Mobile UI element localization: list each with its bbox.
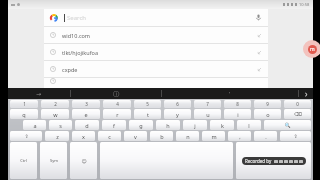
staticText: 5 (146, 101, 149, 107)
button[interactable]: r (103, 109, 131, 119)
button[interactable]: 0 (284, 100, 311, 108)
staticText: › (305, 88, 308, 99)
button[interactable]: 1 (10, 100, 38, 108)
staticText: 🔍 (284, 122, 291, 128)
button[interactable]: wid10.com (44, 27, 268, 43)
button[interactable]: d (75, 120, 99, 130)
staticText: ⌫ (294, 111, 302, 117)
button[interactable]: x (72, 131, 95, 141)
staticText: 10:58 (299, 2, 310, 7)
other: Voice search (255, 14, 262, 21)
button[interactable]: c (98, 131, 121, 141)
button[interactable]: q (10, 109, 38, 119)
button[interactable]: Shift right (280, 131, 311, 141)
button[interactable]: Search (264, 120, 311, 130)
staticText: . (265, 133, 267, 140)
button[interactable]: More suggestions (299, 88, 313, 99)
staticText: q (22, 111, 26, 118)
other: Insert suggestion (257, 50, 262, 55)
button[interactable]: 3 (72, 100, 100, 108)
staticText: m (310, 46, 315, 53)
staticText: 4 (116, 101, 119, 107)
button[interactable]: a (23, 120, 46, 130)
button[interactable]: 8 (224, 100, 251, 108)
staticText: s (59, 122, 62, 129)
button[interactable]: Backspace (284, 109, 311, 119)
staticText: 9 (266, 101, 269, 107)
button[interactable]: tlkt/hjojikufoa (44, 44, 268, 60)
button[interactable]: v (124, 131, 147, 141)
button[interactable]: g (129, 120, 153, 130)
button[interactable]: → (8, 88, 70, 99)
button[interactable]: Enter (236, 142, 311, 179)
button[interactable]: s (49, 120, 72, 130)
button[interactable]: Emoji (70, 142, 97, 179)
staticText: a (33, 122, 37, 129)
button[interactable]: , (228, 131, 251, 141)
staticText: Ctrl (20, 158, 27, 163)
other: Insert suggestion (257, 33, 262, 38)
staticText: y (176, 111, 179, 118)
button[interactable]: u (194, 109, 221, 119)
staticText: o (266, 111, 270, 118)
staticText: 3 (85, 101, 88, 107)
staticText: , (239, 133, 241, 140)
staticText: ⇧ (24, 133, 29, 139)
button[interactable]: e (72, 109, 100, 119)
staticText: g (139, 122, 143, 129)
button[interactable]: 9 (254, 100, 281, 108)
staticText: → (36, 90, 42, 97)
staticText: 7 (206, 101, 209, 107)
staticText: wid10.com (62, 32, 91, 39)
staticText: n (186, 133, 190, 140)
staticText: ☺ (81, 158, 87, 164)
button[interactable]: z (45, 131, 69, 141)
staticText: 0 (296, 101, 299, 107)
button[interactable]: 4 (103, 100, 131, 108)
button[interactable]: t (134, 109, 161, 119)
button[interactable]: j (183, 120, 207, 130)
staticText: ⇧ (293, 133, 298, 139)
button[interactable]: n (176, 131, 199, 141)
staticText: cxpde (62, 66, 78, 73)
staticText: b (160, 133, 164, 140)
button[interactable]: Shift (10, 131, 42, 141)
staticText: ⓘ (113, 90, 119, 98)
button[interactable]: b (150, 131, 173, 141)
button[interactable]: y (164, 109, 191, 119)
button[interactable]: Recording control (303, 40, 320, 58)
button[interactable]: cxpde (44, 61, 268, 77)
staticText: l (248, 122, 250, 129)
button[interactable]: . (254, 131, 277, 141)
button[interactable]: 7 (194, 100, 221, 108)
button[interactable]: 2 (41, 100, 69, 108)
button[interactable]: k (210, 120, 234, 130)
button[interactable]: ⓘ (71, 88, 161, 99)
staticText: Sym (50, 158, 58, 163)
staticText: d (85, 122, 89, 129)
staticText: j (194, 122, 196, 129)
staticText: 6 (176, 101, 179, 107)
button[interactable]: Sym (40, 142, 67, 179)
button[interactable]: i (224, 109, 251, 119)
button[interactable]: 6 (164, 100, 191, 108)
button[interactable]: h (156, 120, 180, 130)
button[interactable]: Search (44, 9, 268, 26)
button[interactable]: Ctrl (10, 142, 37, 179)
button[interactable]: 5 (134, 100, 161, 108)
button[interactable]: o (254, 109, 281, 119)
other: Insert suggestion (257, 67, 262, 72)
staticText: 2 (54, 101, 57, 107)
staticText: k (221, 122, 224, 129)
staticText: c (108, 133, 111, 140)
staticText: r (116, 111, 119, 118)
button[interactable]: m (202, 131, 225, 141)
staticText: Search (67, 14, 86, 22)
button[interactable]: Space (100, 142, 233, 179)
button[interactable]: w (41, 109, 69, 119)
button[interactable]: f (102, 120, 126, 130)
staticText: x (82, 133, 85, 140)
staticText: i (237, 111, 239, 118)
button[interactable]: l (237, 120, 261, 130)
